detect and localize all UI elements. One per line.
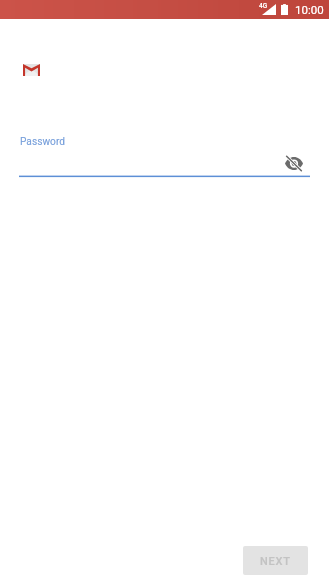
button[interactable]: Show password xyxy=(283,152,305,174)
staticText: 10:00 xyxy=(295,3,324,16)
button[interactable]: NEXT xyxy=(243,546,308,575)
staticText: NEXT xyxy=(260,555,291,568)
staticText: Password xyxy=(20,136,65,148)
staticText: 4G xyxy=(259,2,268,10)
